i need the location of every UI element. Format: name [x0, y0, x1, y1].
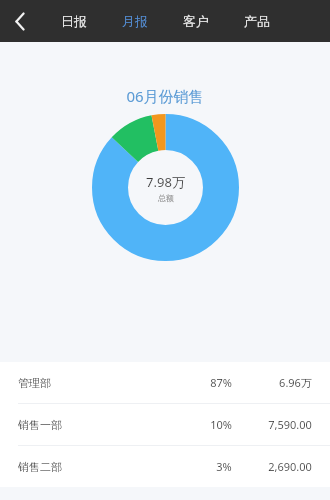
staticText: 10%	[210, 417, 232, 432]
staticText: 月报	[122, 13, 148, 29]
staticText: 管理部	[18, 376, 51, 390]
staticText: 日报	[61, 13, 87, 29]
button[interactable]: 管理部	[0, 362, 330, 403]
button[interactable]: 客户	[165, 0, 226, 42]
staticText: 客户	[183, 13, 209, 29]
staticText: 销售一部	[18, 418, 62, 432]
staticText: 7,590.00	[268, 417, 312, 432]
staticText: 06月份销售	[126, 86, 204, 106]
staticText: 销售二部	[18, 460, 62, 474]
staticText: 总额	[158, 193, 174, 203]
staticText: 2,690.00	[268, 459, 312, 474]
staticText: 产品	[244, 13, 270, 29]
button[interactable]: Back	[0, 0, 40, 42]
button[interactable]: 日报	[43, 0, 104, 42]
button[interactable]: 月报	[104, 0, 165, 42]
button[interactable]: 销售二部	[0, 446, 330, 487]
staticText: 87%	[210, 375, 232, 390]
button[interactable]: 产品	[226, 0, 287, 42]
staticText: 3%	[216, 459, 232, 474]
staticText: 6.96万	[279, 375, 312, 390]
staticText: 7.98万	[146, 173, 185, 191]
button[interactable]: 销售一部	[0, 404, 330, 445]
